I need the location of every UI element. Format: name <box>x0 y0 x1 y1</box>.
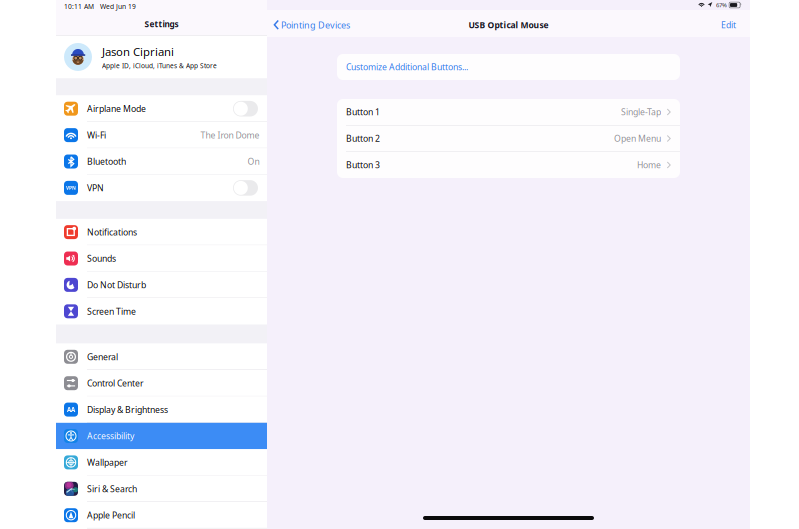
button[interactable]: Siri & Search <box>56 476 267 502</box>
staticText: Settings <box>144 18 178 30</box>
button[interactable]: Accessibility <box>56 423 267 449</box>
staticText: Do Not Disturb <box>87 279 146 291</box>
staticText: Open Menu <box>614 133 661 144</box>
staticText: Apple Pencil <box>87 509 135 521</box>
staticText: Customize Additional Buttons... <box>346 61 468 73</box>
staticText: Display & Brightness <box>87 404 168 415</box>
button[interactable]: Notifications <box>56 219 267 245</box>
staticText: Button 3 <box>346 159 380 171</box>
staticText: The Iron Dome <box>200 129 259 141</box>
button[interactable]: Edit <box>711 13 750 37</box>
staticText: AA <box>67 405 75 414</box>
button[interactable]: Pointing Devices <box>267 13 354 37</box>
staticText: Single-Tap <box>621 106 661 118</box>
staticText: Control Center <box>87 377 144 389</box>
staticText: Notifications <box>87 226 137 238</box>
staticText: USB Optical Mouse <box>468 19 548 31</box>
staticText: General <box>87 351 118 363</box>
button[interactable]: General <box>56 344 267 370</box>
staticText: Accessibility <box>87 430 134 442</box>
staticText: Wallpaper <box>87 456 128 468</box>
staticText: Pointing Devices <box>281 19 350 31</box>
button[interactable]: Sounds <box>56 245 267 272</box>
staticText: VPN <box>87 182 104 194</box>
button[interactable]: VPN <box>56 175 267 201</box>
button[interactable]: Apple Pencil <box>56 502 267 528</box>
staticText: Jason Cipriani <box>102 44 174 59</box>
button[interactable]: Jason Cipriani <box>56 36 267 78</box>
staticText: Screen Time <box>87 305 136 317</box>
staticText: 10:11 AM Wed Jun 19 <box>64 2 136 11</box>
staticText: Button 2 <box>346 133 380 144</box>
staticText: Apple ID, iCloud, iTunes & App Store <box>102 61 217 70</box>
button[interactable]: Bluetooth <box>56 148 267 175</box>
staticText: Sounds <box>87 253 116 264</box>
button[interactable]: Button 3 <box>337 152 680 178</box>
staticText: Bluetooth <box>87 156 126 167</box>
staticText: Button 1 <box>346 106 380 118</box>
staticText: Siri & Search <box>87 483 137 495</box>
button[interactable]: Airplane Mode <box>56 95 267 122</box>
button[interactable]: Button 2 <box>337 125 680 151</box>
button[interactable]: Wallpaper <box>56 449 267 476</box>
button[interactable]: Button 1 <box>337 99 680 125</box>
staticText: VPN <box>66 185 76 191</box>
button[interactable]: AA <box>56 396 267 423</box>
button[interactable]: Screen Time <box>56 298 267 324</box>
staticText: Airplane Mode <box>87 103 146 115</box>
staticText: Wi-Fi <box>87 129 106 141</box>
button[interactable]: Customize Additional Buttons... <box>337 54 680 80</box>
button[interactable]: Do Not Disturb <box>56 272 267 298</box>
button[interactable]: Wi-Fi <box>56 122 267 148</box>
staticText: On <box>247 156 259 167</box>
staticText: 67% <box>716 1 727 9</box>
staticText: Edit <box>721 19 736 31</box>
button[interactable]: Control Center <box>56 370 267 396</box>
staticText: Home <box>637 159 661 171</box>
